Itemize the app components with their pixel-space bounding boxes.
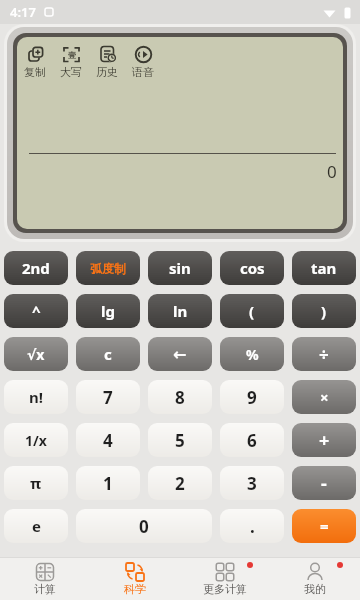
button[interactable]: ): [292, 294, 356, 328]
staticText: 更多计算: [203, 582, 247, 596]
staticText: 2nd: [22, 258, 50, 278]
button[interactable]: ^: [4, 294, 68, 328]
button[interactable]: ←: [148, 337, 212, 371]
staticText: e: [32, 516, 41, 536]
button[interactable]: tan: [292, 251, 356, 285]
button[interactable]: 1: [76, 466, 140, 500]
button[interactable]: =: [292, 509, 356, 543]
button[interactable]: ×: [292, 380, 356, 414]
staticText: (: [249, 301, 255, 321]
button[interactable]: π: [4, 466, 68, 500]
button[interactable]: ÷: [292, 337, 356, 371]
button[interactable]: (: [220, 294, 284, 328]
staticText: =: [320, 516, 329, 536]
staticText: 我的: [304, 582, 326, 596]
button[interactable]: 1/x: [4, 423, 68, 457]
button[interactable]: 科学: [90, 558, 180, 600]
button[interactable]: 3: [220, 466, 284, 500]
staticText: 1/x: [25, 431, 47, 450]
staticText: 0: [139, 515, 149, 538]
staticText: 4:17: [10, 3, 36, 21]
button[interactable]: 6: [220, 423, 284, 457]
staticText: 7: [103, 386, 113, 409]
button[interactable]: 复制: [17, 45, 53, 79]
button[interactable]: ln: [148, 294, 212, 328]
staticText: 1: [103, 472, 113, 495]
button[interactable]: n!: [4, 380, 68, 414]
staticText: ^: [32, 301, 41, 321]
staticText: 科学: [124, 582, 146, 596]
button[interactable]: 更多计算: [180, 558, 270, 600]
button[interactable]: cos: [220, 251, 284, 285]
staticText: 复制: [24, 65, 46, 79]
staticText: ÷: [319, 343, 329, 366]
staticText: 壹: [68, 50, 76, 60]
staticText: +: [319, 428, 330, 453]
staticText: √x: [27, 345, 45, 364]
staticText: 语音: [132, 65, 154, 79]
button[interactable]: 计算: [0, 558, 90, 600]
staticText: %: [246, 345, 259, 364]
button[interactable]: 弧度制: [76, 251, 140, 285]
button[interactable]: +: [292, 423, 356, 457]
staticText: c: [104, 344, 112, 364]
button[interactable]: 2nd: [4, 251, 68, 285]
button[interactable]: 我的: [270, 558, 360, 600]
button[interactable]: 语音: [125, 45, 161, 79]
staticText: cos: [240, 258, 265, 278]
staticText: ): [321, 301, 327, 321]
button[interactable]: e: [4, 509, 68, 543]
staticText: 9: [247, 386, 257, 409]
staticText: 4: [103, 429, 113, 452]
button[interactable]: -: [292, 466, 356, 500]
staticText: 0: [327, 160, 337, 183]
staticText: lg: [101, 301, 115, 321]
button[interactable]: 壹: [53, 45, 89, 79]
staticText: 6: [247, 429, 257, 452]
button[interactable]: lg: [76, 294, 140, 328]
button[interactable]: c: [76, 337, 140, 371]
staticText: 大写: [60, 65, 82, 79]
button[interactable]: 8: [148, 380, 212, 414]
button[interactable]: √x: [4, 337, 68, 371]
staticText: 历史: [96, 65, 118, 79]
staticText: 8: [175, 386, 185, 409]
staticText: tan: [311, 258, 337, 278]
staticText: 2: [175, 472, 185, 495]
button[interactable]: 5: [148, 423, 212, 457]
button[interactable]: 0: [76, 509, 212, 543]
staticText: π: [30, 473, 42, 493]
staticText: ×: [320, 387, 329, 407]
staticText: -: [321, 471, 327, 496]
button[interactable]: .: [220, 509, 284, 543]
staticText: 3: [247, 472, 257, 495]
staticText: ←: [173, 345, 187, 364]
button[interactable]: 历史: [89, 45, 125, 79]
staticText: .: [250, 515, 255, 538]
button[interactable]: 4: [76, 423, 140, 457]
button[interactable]: 2: [148, 466, 212, 500]
staticText: ln: [173, 301, 188, 321]
button[interactable]: 9: [220, 380, 284, 414]
button[interactable]: %: [220, 337, 284, 371]
staticText: 计算: [34, 582, 56, 596]
staticText: 弧度制: [90, 261, 126, 276]
staticText: 5: [175, 429, 185, 452]
staticText: n!: [29, 387, 43, 407]
button[interactable]: sin: [148, 251, 212, 285]
staticText: sin: [169, 258, 191, 278]
button[interactable]: 7: [76, 380, 140, 414]
